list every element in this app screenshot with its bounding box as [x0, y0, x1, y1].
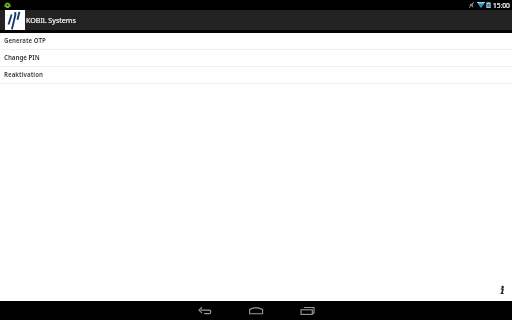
staticText: KOBIL Systems — [26, 15, 76, 25]
button[interactable]: Home — [232, 301, 280, 320]
button[interactable]: Generate OTP — [0, 33, 512, 50]
staticText: Generate OTP — [4, 36, 46, 44]
staticText: 15:00 — [493, 1, 510, 10]
staticText: Change PIN — [4, 53, 40, 61]
button[interactable]: Recent apps — [283, 301, 331, 320]
button[interactable]: Info — [493, 279, 510, 295]
button[interactable]: Change PIN — [0, 50, 512, 67]
button[interactable]: Reaktivation — [0, 67, 512, 84]
staticText: Reaktivation — [4, 70, 43, 78]
button[interactable]: Back — [181, 301, 229, 320]
